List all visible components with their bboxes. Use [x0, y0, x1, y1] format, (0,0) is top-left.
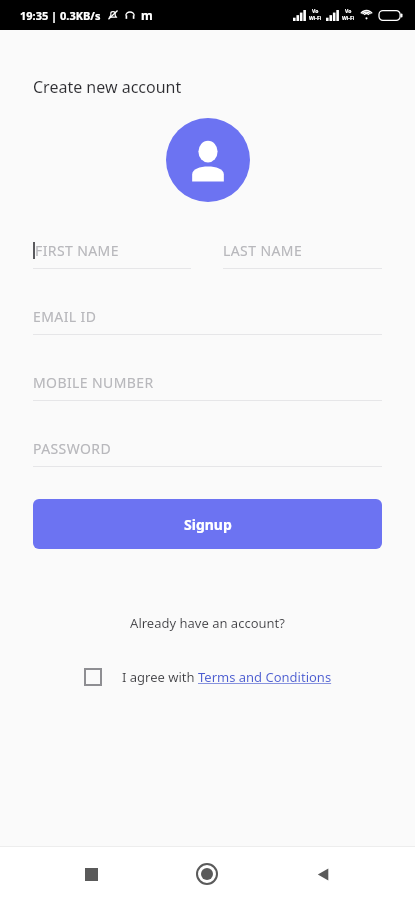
- button[interactable]: EMAIL ID: [33, 302, 382, 335]
- staticText: LAST NAME: [223, 241, 303, 260]
- button[interactable]: PASSWORD: [33, 434, 382, 467]
- staticText: MOBILE NUMBER: [33, 373, 154, 392]
- staticText: EMAIL ID: [33, 307, 97, 326]
- button[interactable]: Agree to terms checkbox: [84, 668, 102, 686]
- staticText: Wi-Fi: [309, 15, 322, 22]
- staticText: m: [141, 7, 153, 23]
- button[interactable]: Recent apps: [67, 850, 115, 898]
- staticText: Already have an account?: [130, 614, 285, 632]
- button[interactable]: Already have an account?: [0, 614, 415, 632]
- staticText: 19:35 | 0.3KB/s: [20, 8, 101, 23]
- button[interactable]: Profile photo: [166, 118, 250, 202]
- staticText: FIRST NAME: [35, 241, 119, 260]
- staticText: Vo: [312, 8, 319, 15]
- staticText: Signup: [184, 515, 232, 534]
- button[interactable]: Terms and Conditions: [198, 668, 332, 686]
- staticText: PASSWORD: [33, 439, 112, 458]
- staticText: Vo: [345, 8, 352, 15]
- staticText: I agree with: [122, 668, 198, 686]
- staticText: Wi-Fi: [342, 15, 355, 22]
- button[interactable]: Back: [299, 850, 347, 898]
- button[interactable]: MOBILE NUMBER: [33, 368, 382, 401]
- staticText: Create new account: [33, 76, 182, 98]
- button[interactable]: Home: [183, 850, 231, 898]
- button[interactable]: Signup: [33, 499, 382, 549]
- button[interactable]: LAST NAME: [223, 236, 382, 269]
- button[interactable]: FIRST NAME: [33, 236, 191, 269]
